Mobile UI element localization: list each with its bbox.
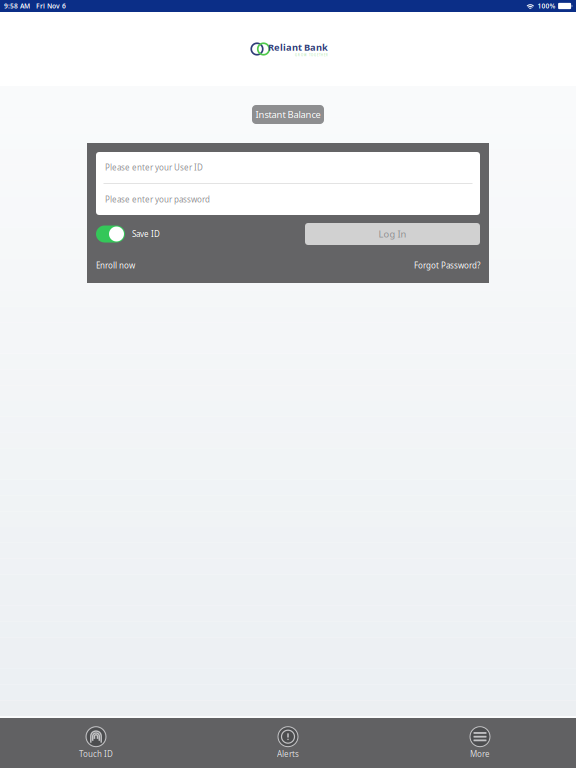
staticText: More — [470, 749, 490, 759]
button[interactable]: Enroll now — [96, 260, 135, 271]
staticText: 9:58 AM — [4, 2, 30, 10]
staticText: Log In — [378, 228, 406, 240]
button[interactable]: Please enter your password — [96, 184, 480, 215]
button[interactable]: More — [384, 718, 576, 768]
staticText: Touch ID — [79, 749, 113, 759]
button[interactable]: Touch ID — [0, 718, 192, 768]
staticText: Please enter your password — [105, 194, 210, 205]
staticText: Enroll now — [96, 260, 135, 271]
button[interactable]: Save ID — [96, 225, 160, 242]
staticText: G R O W T O G E T H E R — [295, 53, 328, 57]
staticText: Save ID — [132, 229, 160, 239]
button[interactable]: Forgot Password? — [414, 260, 480, 271]
staticText: Forgot Password? — [414, 260, 480, 271]
button[interactable]: Alerts — [192, 718, 384, 768]
staticText: Fri Nov 6 — [36, 2, 66, 10]
staticText: Instant Balance — [255, 108, 320, 121]
staticText: Reliant Bank — [268, 41, 328, 53]
button[interactable]: Please enter your User ID — [96, 152, 480, 183]
staticText: Please enter your User ID — [105, 162, 203, 173]
button[interactable]: Instant Balance — [252, 105, 324, 124]
staticText: 100% — [538, 2, 556, 10]
staticText: Alerts — [277, 749, 299, 759]
button[interactable]: Log In — [305, 223, 480, 245]
